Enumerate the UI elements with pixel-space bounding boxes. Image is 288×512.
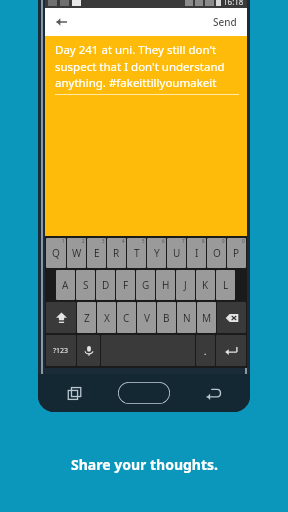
- staticText: N: [183, 311, 191, 325]
- button[interactable]: Back: [49, 10, 73, 34]
- button[interactable]: N: [177, 302, 196, 333]
- button[interactable]: C: [117, 302, 136, 333]
- staticText: 3: [102, 238, 105, 244]
- staticText: Q: [52, 246, 60, 260]
- button[interactable]: G: [136, 270, 155, 300]
- button[interactable]: H: [156, 270, 175, 300]
- staticText: W: [72, 246, 82, 260]
- staticText: 6: [162, 238, 165, 244]
- staticText: Send: [213, 15, 237, 29]
- button[interactable]: Recents: [60, 378, 90, 408]
- button[interactable]: Back: [198, 378, 228, 408]
- button[interactable]: Shift: [46, 302, 76, 333]
- button[interactable]: B: [157, 302, 176, 333]
- button[interactable]: Period: [196, 335, 215, 366]
- staticText: B: [163, 311, 170, 325]
- staticText: 5: [142, 238, 145, 244]
- staticText: Day 241 at uni. They still don't suspect…: [55, 42, 239, 90]
- staticText: I: [195, 246, 199, 260]
- staticText: U: [173, 246, 181, 260]
- staticText: H: [162, 278, 170, 292]
- staticText: S: [83, 278, 89, 292]
- staticText: Share your thoughts.: [71, 455, 218, 474]
- staticText: R: [113, 246, 120, 260]
- staticText: 16:18: [223, 0, 244, 7]
- staticText: D: [102, 278, 110, 292]
- button[interactable]: Enter: [216, 335, 246, 366]
- staticText: A: [62, 278, 69, 292]
- button[interactable]: J: [176, 270, 195, 300]
- button[interactable]: V: [137, 302, 156, 333]
- button[interactable]: Z: [77, 302, 96, 333]
- staticText: 1: [62, 238, 65, 244]
- button[interactable]: L: [216, 270, 235, 300]
- button[interactable]: Y: [147, 238, 166, 268]
- staticText: P: [233, 246, 240, 260]
- staticText: K: [202, 278, 209, 292]
- button[interactable]: D: [96, 270, 115, 300]
- staticText: 8: [202, 238, 205, 244]
- staticText: 0: [242, 238, 245, 244]
- button[interactable]: R: [107, 238, 126, 268]
- staticText: L: [223, 278, 229, 292]
- staticText: Z: [84, 311, 90, 325]
- staticText: 4: [122, 238, 125, 244]
- staticText: .: [204, 345, 207, 357]
- button[interactable]: Voice input: [77, 335, 100, 366]
- button[interactable]: A: [56, 270, 75, 300]
- button[interactable]: S: [76, 270, 95, 300]
- staticText: M: [202, 311, 212, 325]
- staticText: 9: [222, 238, 225, 244]
- staticText: V: [144, 311, 150, 325]
- staticText: T: [134, 246, 140, 260]
- button[interactable]: Backspace: [217, 302, 246, 333]
- button[interactable]: M: [197, 302, 216, 333]
- staticText: X: [104, 311, 110, 325]
- button[interactable]: Q: [46, 238, 66, 268]
- staticText: G: [142, 278, 150, 292]
- staticText: C: [123, 311, 130, 325]
- button[interactable]: ?123: [46, 335, 76, 366]
- button[interactable]: P: [227, 238, 246, 268]
- staticText: ?123: [53, 346, 69, 356]
- button[interactable]: O: [207, 238, 226, 268]
- staticText: Y: [154, 246, 160, 260]
- staticText: F: [123, 278, 129, 292]
- staticText: 2: [82, 238, 85, 244]
- button[interactable]: F: [116, 270, 135, 300]
- staticText: O: [213, 246, 221, 260]
- button[interactable]: Send: [203, 10, 247, 34]
- button[interactable]: Home: [118, 382, 170, 404]
- button[interactable]: T: [127, 238, 146, 268]
- staticText: E: [94, 246, 100, 260]
- staticText: J: [184, 278, 187, 292]
- button[interactable]: W: [67, 238, 86, 268]
- button[interactable]: X: [97, 302, 116, 333]
- staticText: 7: [182, 238, 185, 244]
- button[interactable]: I: [187, 238, 206, 268]
- button[interactable]: K: [196, 270, 215, 300]
- button[interactable]: E: [87, 238, 106, 268]
- button[interactable]: U: [167, 238, 186, 268]
